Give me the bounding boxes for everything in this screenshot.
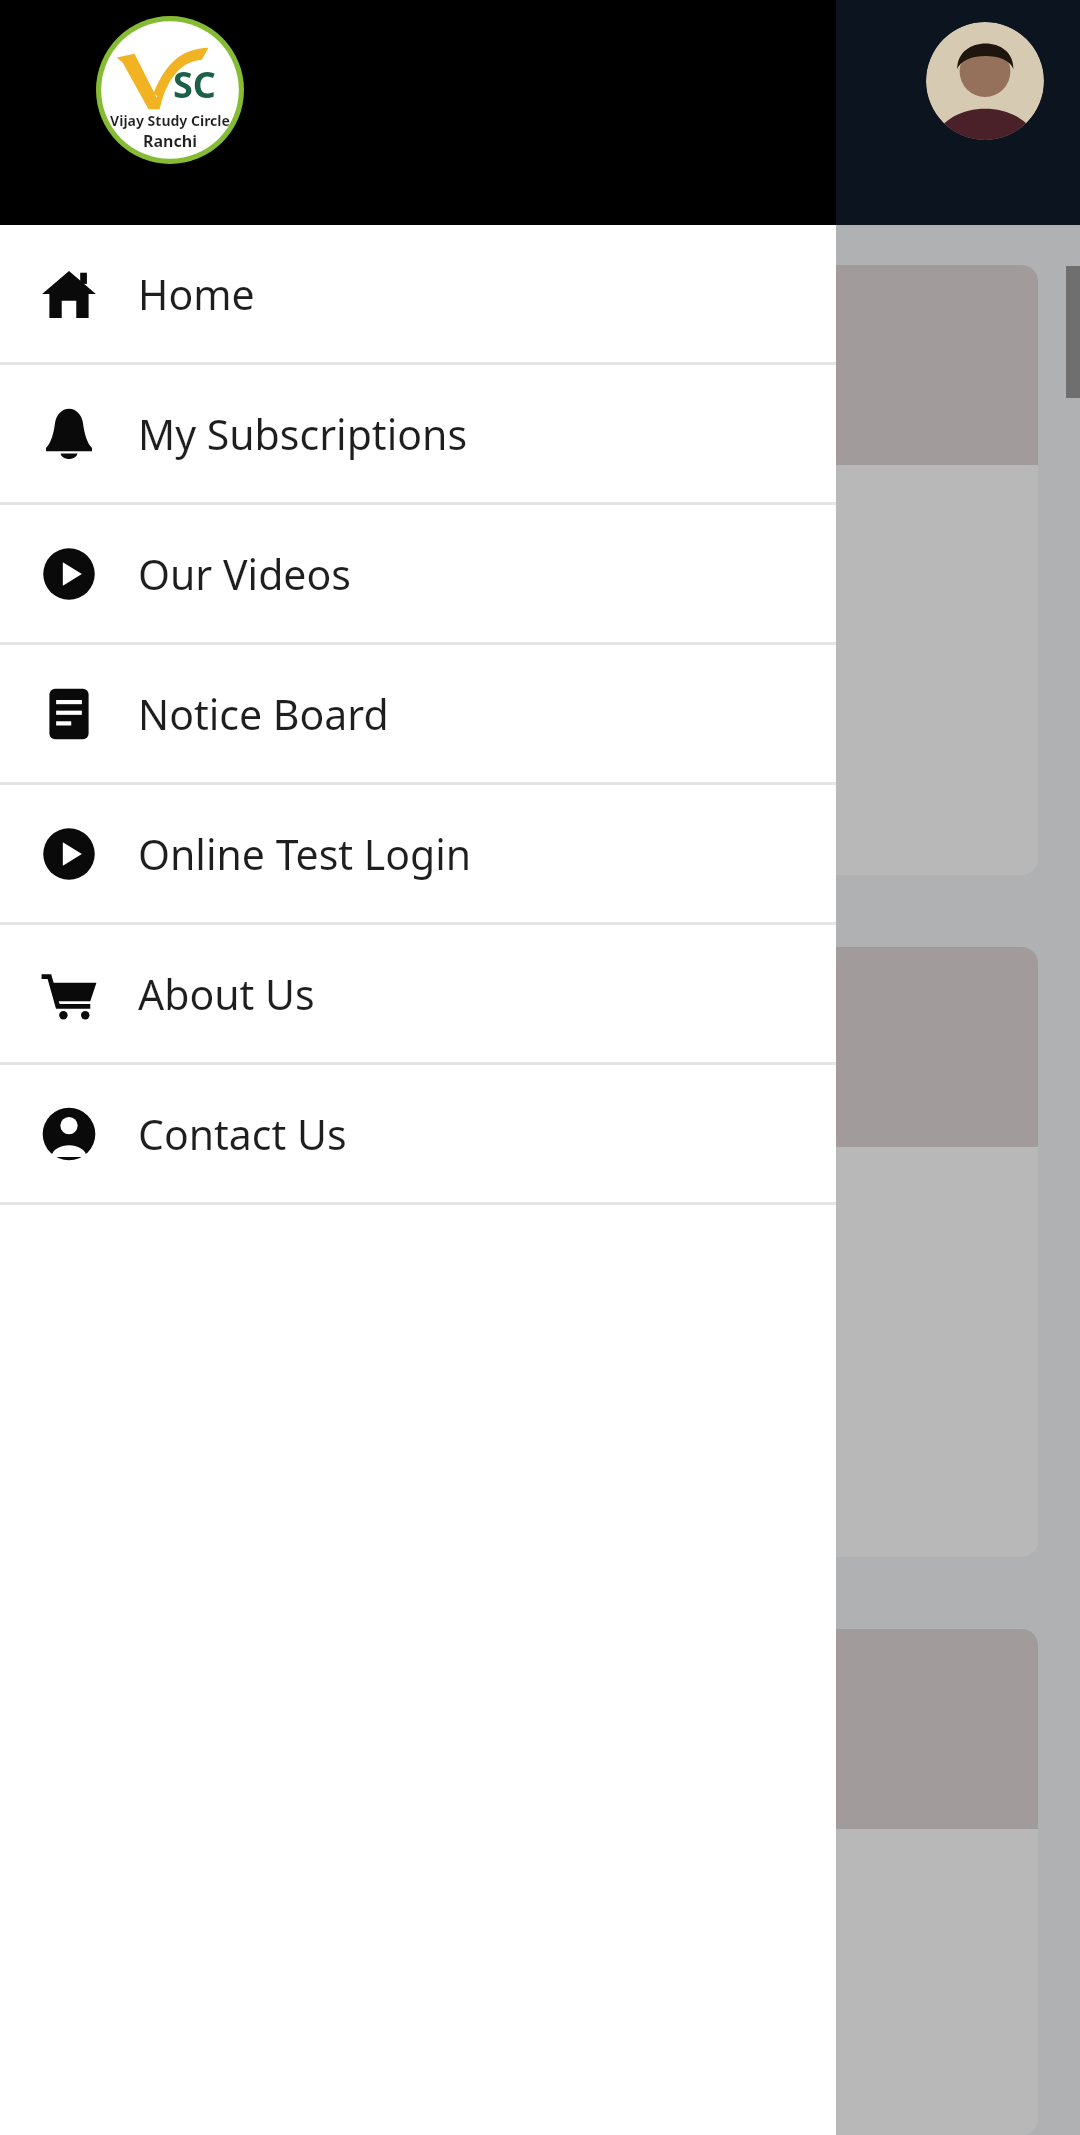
- button[interactable]: VIEW PDF: [62, 721, 500, 819]
- button[interactable]: My Subscriptions: [0, 365, 836, 505]
- button[interactable]: VIEW PDF: [22, 265, 1038, 875]
- staticText: SC: [173, 60, 216, 109]
- button[interactable]: VIEW PDF: [22, 947, 1038, 1557]
- button[interactable]: Home: [0, 225, 836, 365]
- staticText: My Subscriptions: [138, 406, 468, 462]
- staticText: About Us: [138, 966, 315, 1022]
- staticText: Vijay Study Circle: [110, 111, 230, 130]
- button[interactable]: Our Videos: [0, 505, 836, 645]
- button[interactable]: Online Test Login: [0, 785, 836, 925]
- button[interactable]: Contact Us: [0, 1065, 836, 1205]
- staticText: Home: [138, 266, 255, 322]
- staticText: Notice Board: [138, 686, 389, 742]
- button[interactable]: Profile: [926, 22, 1044, 140]
- button[interactable]: About Us: [0, 925, 836, 1065]
- staticText: Our Videos: [138, 546, 351, 602]
- staticText: Contact Us: [138, 1106, 347, 1162]
- button[interactable]: Vijay Study Circle Ranchi: [96, 16, 244, 164]
- button[interactable]: VIEW PDF: [22, 1629, 1038, 2135]
- staticText: Online Test Login: [138, 826, 472, 882]
- button[interactable]: Notice Board: [0, 645, 836, 785]
- staticText: Ranchi: [143, 130, 197, 152]
- staticText: VIEW PDF: [193, 747, 370, 793]
